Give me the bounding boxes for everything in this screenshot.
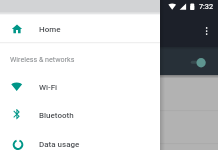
button[interactable]: More options [200,24,213,37]
button[interactable]: Bluetooth [0,102,160,131]
button[interactable]: Wi-Fi [0,73,160,102]
staticText: 7:32 [199,2,214,11]
staticText: Wireless & networks [10,55,75,63]
staticText: Home [39,25,61,34]
staticText: Wi-Fi [39,83,58,92]
staticText: Data usage [39,140,80,149]
button[interactable]: Data usage [0,130,160,150]
button[interactable]: Wi-Fi on [188,55,210,70]
staticText: Bluetooth [39,111,74,120]
button[interactable]: Home [0,15,160,43]
